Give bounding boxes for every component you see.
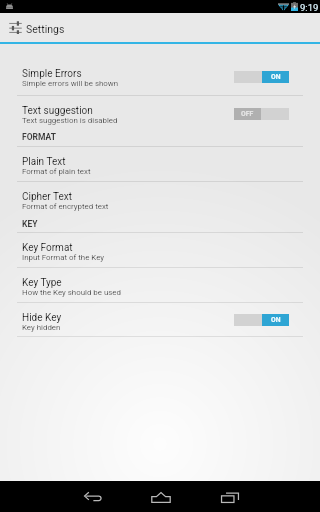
button[interactable]: Key Format bbox=[17, 233, 303, 267]
staticText: KEY bbox=[22, 219, 38, 229]
staticText: ON bbox=[271, 73, 281, 81]
staticText: Key Type bbox=[22, 277, 62, 289]
staticText: Plain Text bbox=[22, 156, 66, 168]
staticText: Key Format bbox=[22, 242, 73, 254]
staticText: OFF bbox=[241, 110, 254, 118]
staticText: ON bbox=[271, 316, 281, 324]
staticText: Text suggestion is disabled bbox=[22, 116, 118, 125]
button[interactable]: Switch on bbox=[234, 314, 289, 326]
button[interactable]: Simple Errors bbox=[17, 59, 303, 95]
staticText: Input Format of the Key bbox=[22, 253, 105, 262]
staticText: Hide Key bbox=[22, 312, 62, 324]
button[interactable]: Settings bbox=[0, 13, 320, 42]
button[interactable]: Switch on bbox=[234, 71, 289, 83]
button[interactable]: Plain Text bbox=[17, 147, 303, 182]
button[interactable]: Back bbox=[65, 482, 121, 512]
button[interactable]: Text suggestion bbox=[17, 96, 303, 132]
staticText: Simple Errors bbox=[22, 68, 82, 80]
button[interactable]: Switch off bbox=[234, 108, 289, 120]
button[interactable]: Key Type bbox=[17, 268, 303, 301]
staticText: Format of encrypted text bbox=[22, 202, 109, 211]
button[interactable]: Hide Key bbox=[17, 303, 303, 337]
button[interactable]: Recent apps bbox=[202, 482, 258, 512]
button[interactable]: Home bbox=[133, 482, 189, 512]
staticText: 9:19 bbox=[300, 2, 319, 13]
staticText: Settings bbox=[26, 23, 65, 35]
staticText: Simple errors will be shown bbox=[22, 79, 119, 88]
staticText: Cipher Text bbox=[22, 191, 73, 203]
staticText: Key hidden bbox=[22, 323, 61, 332]
staticText: Text suggestion bbox=[22, 105, 93, 117]
staticText: Format of plain text bbox=[22, 167, 91, 176]
button[interactable]: Cipher Text bbox=[17, 182, 303, 218]
staticText: FORMAT bbox=[22, 132, 56, 142]
staticText: How the Key should be used bbox=[22, 288, 121, 297]
